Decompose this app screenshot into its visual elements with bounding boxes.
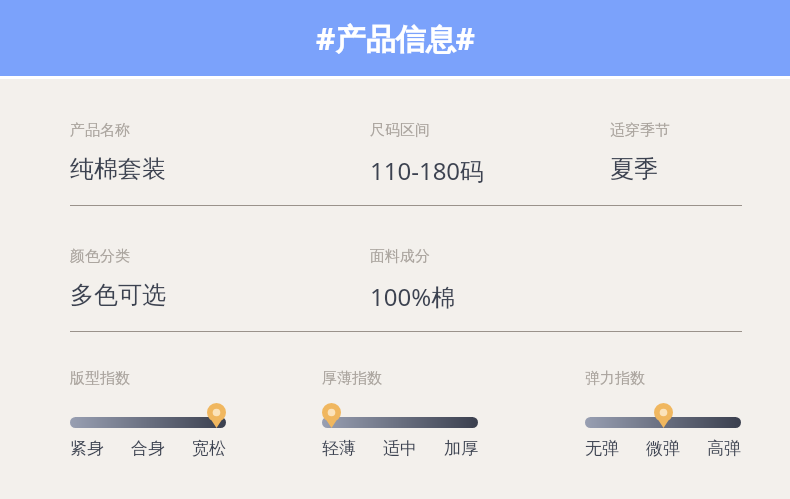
button[interactable]: 适中 [383,438,417,459]
other: 版型指数 [207,403,226,428]
button[interactable]: 宽松 [192,438,226,459]
button[interactable]: 加厚 [444,438,478,459]
staticText: 夏季 [610,154,658,184]
button[interactable]: 合身 [131,438,165,459]
staticText: 厚薄指数 [322,369,382,388]
button[interactable]: 面料成分 [370,247,456,313]
other: 弹力指数 [654,403,673,428]
staticText: 颜色分类 [70,247,130,266]
staticText: 面料成分 [370,247,430,266]
staticText: 适穿季节 [610,121,670,140]
staticText: #产品信息# [316,18,475,59]
button[interactable]: 无弹 [585,438,619,459]
staticText: 版型指数 [70,369,130,388]
button[interactable]: 颜色分类 [70,247,166,310]
staticText: 110-180码 [370,154,485,187]
staticText: 100%棉 [370,280,456,313]
button[interactable]: 尺码区间 [370,121,485,187]
button[interactable]: 适穿季节 [610,121,670,184]
button[interactable]: 版型指数 [70,369,226,459]
button[interactable]: #产品信息# [0,0,790,76]
other: 厚薄指数 [322,403,341,428]
staticText: 多色可选 [70,280,166,310]
staticText: 尺码区间 [370,121,430,140]
button[interactable]: 紧身 [70,438,104,459]
button[interactable]: 高弹 [707,438,741,459]
button[interactable]: 轻薄 [322,438,356,459]
staticText: 纯棉套装 [70,154,166,184]
button[interactable]: 产品名称 [70,121,166,184]
staticText: 弹力指数 [585,369,645,388]
button[interactable]: 弹力指数 [585,369,741,459]
staticText: 产品名称 [70,121,130,140]
button[interactable]: 厚薄指数 [322,369,478,459]
button[interactable]: 微弹 [646,438,680,459]
